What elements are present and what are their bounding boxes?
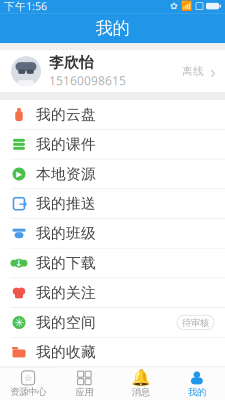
button[interactable]: ➜ — [0, 189, 225, 219]
staticText: 我的下载 — [36, 254, 96, 272]
staticText: › — [210, 59, 216, 83]
button[interactable]: 我的 — [169, 367, 225, 400]
staticText: ↓ — [15, 258, 23, 268]
staticText: 我的空间 — [36, 313, 96, 331]
staticText: 资源中心 — [10, 386, 46, 397]
staticText: 我的推送 — [36, 195, 96, 213]
button[interactable]: 我的云盘 — [0, 100, 225, 130]
button[interactable]: ↓ — [0, 249, 225, 278]
staticText: ▶ — [16, 169, 22, 179]
staticText: 🔔 — [131, 369, 151, 387]
button[interactable]: 我的课件 — [0, 130, 225, 159]
staticText: 李欣怡 — [49, 54, 94, 72]
staticText: ➜ — [18, 198, 27, 210]
button[interactable]: ✳ — [0, 308, 225, 338]
staticText: 离线 — [182, 65, 204, 78]
staticText: 待审核 — [182, 317, 209, 328]
staticText: 15160098615 — [49, 73, 126, 89]
staticText: 我的关注 — [36, 284, 96, 302]
button[interactable]: 🔔 — [112, 367, 169, 400]
staticText: 我的云盘 — [36, 106, 96, 124]
staticText: 我的班级 — [36, 224, 96, 242]
button[interactable]: 我的班级 — [0, 219, 225, 249]
button[interactable]: 我的关注 — [0, 278, 225, 308]
staticText: ☆ — [24, 373, 32, 383]
staticText: 我的 — [95, 17, 129, 39]
staticText: 我的 — [188, 386, 206, 398]
staticText: 📶 — [181, 1, 193, 11]
staticText: 我的课件 — [36, 135, 96, 153]
button[interactable]: 我的收藏 — [0, 338, 225, 367]
staticText: 下午1:56 — [4, 0, 47, 13]
staticText: ✳ — [14, 316, 24, 329]
staticText: 我的收藏 — [36, 343, 96, 361]
staticText: 本地资源 — [36, 165, 96, 183]
button[interactable]: 李欣怡 — [0, 50, 225, 92]
button[interactable]: ▶ — [0, 159, 225, 189]
staticText: 应用 — [75, 386, 93, 398]
button[interactable]: 应用 — [56, 367, 112, 400]
button[interactable]: ☆ — [0, 368, 56, 400]
staticText: 消息 — [132, 386, 150, 398]
staticText: ✿ — [170, 1, 178, 11]
